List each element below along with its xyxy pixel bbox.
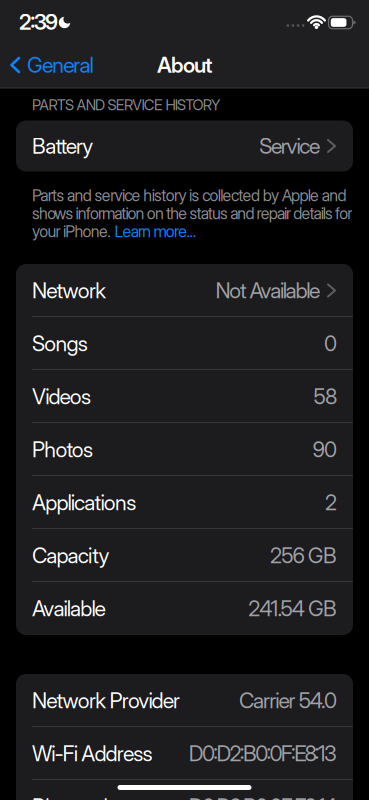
staticText: Learn more... bbox=[114, 222, 197, 241]
staticText: shows information on the status and repa… bbox=[32, 204, 352, 223]
button[interactable]: General bbox=[10, 52, 94, 78]
staticText: Carrier 54.0 bbox=[239, 688, 337, 713]
button[interactable]: Learn more... bbox=[114, 222, 197, 241]
staticText: 2:39 bbox=[19, 9, 58, 35]
staticText: Photos bbox=[32, 437, 93, 462]
staticText: Available bbox=[32, 596, 106, 621]
staticText: Wi-Fi Address bbox=[32, 741, 152, 766]
staticText: 90 bbox=[312, 437, 337, 462]
staticText: Service bbox=[259, 133, 320, 159]
staticText: Parts and service history is collected b… bbox=[32, 186, 346, 205]
staticText: Applications bbox=[32, 490, 136, 515]
staticText: Songs bbox=[32, 331, 88, 356]
staticText: 2 bbox=[325, 490, 337, 515]
staticText: Bluetooth bbox=[32, 794, 116, 800]
staticText: General bbox=[27, 52, 94, 78]
staticText: Network Provider bbox=[32, 688, 180, 713]
staticText: PARTS AND SERVICE HISTORY bbox=[32, 96, 220, 114]
staticText: About bbox=[157, 52, 212, 78]
staticText: Capacity bbox=[32, 543, 109, 568]
staticText: D0:D2:B0:0F:E8:14 bbox=[189, 794, 337, 800]
button[interactable]: Battery bbox=[16, 120, 353, 171]
staticText: Not Available bbox=[215, 278, 320, 303]
staticText: 241.54 GB bbox=[248, 596, 337, 621]
staticText: your iPhone. bbox=[32, 222, 114, 241]
staticText: 256 GB bbox=[270, 543, 337, 568]
staticText: 58 bbox=[313, 384, 337, 409]
staticText: 0 bbox=[324, 331, 337, 356]
staticText: Network bbox=[32, 278, 106, 303]
staticText: Battery bbox=[32, 133, 93, 159]
staticText: Videos bbox=[32, 384, 91, 409]
button[interactable]: Network bbox=[16, 264, 353, 317]
staticText: D0:D2:B0:0F:E8:13 bbox=[189, 741, 337, 766]
